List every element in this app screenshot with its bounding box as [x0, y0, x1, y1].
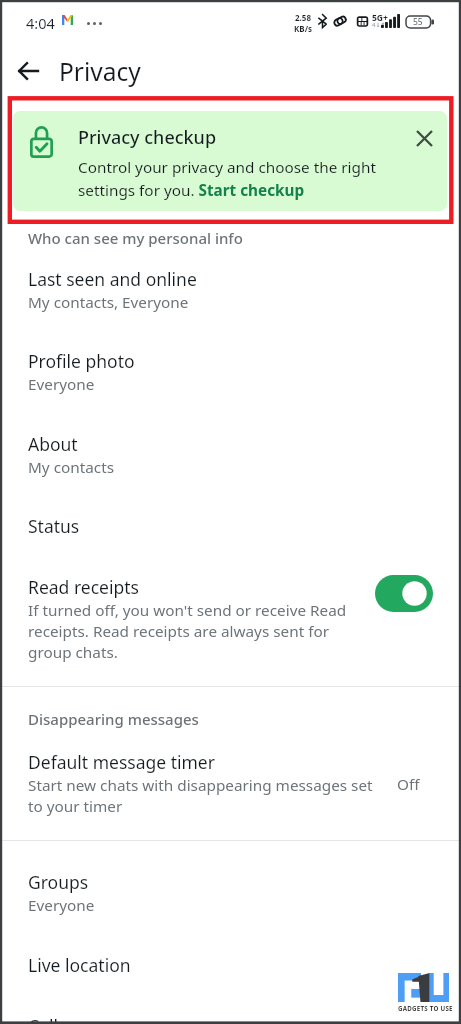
staticText: My contacts, Everyone	[28, 292, 189, 313]
button[interactable]: Back	[9, 52, 47, 90]
staticText: Everyone	[28, 374, 95, 395]
button[interactable]: Dismiss	[407, 121, 441, 155]
button[interactable]: Groups	[0, 870, 461, 932]
staticText: If turned off, you won't send or receive…	[28, 600, 368, 663]
staticText: 5G+	[372, 12, 388, 24]
button[interactable]: Status	[0, 514, 461, 560]
staticText: Live location	[28, 953, 131, 977]
staticText: 2.58	[295, 12, 311, 23]
staticText: Control your privacy and choose the righ…	[78, 157, 398, 200]
staticText: Status	[28, 514, 80, 538]
button[interactable]: Read receipts	[0, 575, 461, 673]
staticText: My contacts	[28, 457, 114, 478]
staticText: About	[28, 432, 78, 456]
staticText: Disappearing messages	[28, 709, 199, 729]
button[interactable]: Live location	[0, 953, 461, 999]
staticText: 55	[413, 16, 423, 28]
staticText: Calls	[28, 1014, 67, 1024]
button[interactable]: Last seen and online	[0, 267, 461, 329]
staticText: 4↓↑	[372, 21, 386, 29]
staticText: Groups	[28, 870, 89, 894]
staticText: GADGETS TO USE	[398, 1004, 453, 1012]
button[interactable]: Calls	[0, 1014, 461, 1024]
staticText: Off	[397, 774, 420, 795]
staticText: Everyone	[28, 895, 95, 916]
staticText: Start new chats with disappearing messag…	[28, 775, 376, 817]
staticText: Who can see my personal info	[28, 228, 243, 248]
button[interactable]: About	[0, 432, 461, 494]
staticText: Privacy checkup	[78, 125, 217, 150]
staticText: Privacy	[59, 55, 141, 88]
staticText: Default message timer	[28, 750, 215, 774]
staticText: Read receipts	[28, 575, 139, 599]
staticText: 4:04	[26, 13, 55, 33]
button[interactable]: Default message timer	[0, 750, 461, 828]
staticText: KB/s	[294, 23, 312, 34]
button[interactable]: Profile photo	[0, 349, 461, 411]
staticText: Last seen and online	[28, 267, 197, 291]
staticText: Profile photo	[28, 349, 135, 373]
button[interactable]: Privacy checkup	[13, 111, 447, 211]
